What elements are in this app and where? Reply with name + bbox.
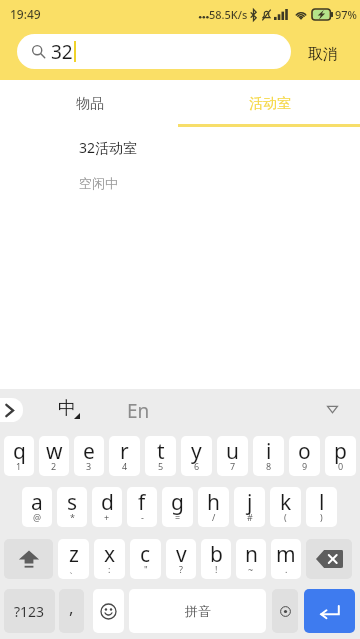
staticText: ) — [320, 511, 323, 523]
staticText: d — [101, 488, 114, 517]
staticText: 32活动室 — [79, 138, 138, 157]
staticText: n — [245, 540, 258, 569]
staticText: 空闲中 — [79, 175, 118, 191]
staticText: r — [120, 437, 129, 466]
staticText: ! — [215, 563, 218, 575]
staticText: t — [157, 437, 165, 466]
button[interactable]: g — [162, 487, 193, 527]
staticText: 中 — [58, 397, 76, 420]
button[interactable]: Period — [272, 589, 298, 633]
button[interactable]: 取消 — [307, 39, 339, 70]
button[interactable]: z — [58, 539, 89, 579]
button[interactable]: q — [4, 436, 34, 476]
button[interactable]: p — [325, 436, 356, 476]
staticText: z — [69, 540, 79, 569]
button[interactable]: l — [306, 487, 337, 527]
button[interactable]: 物品 — [0, 80, 180, 128]
staticText: 32 — [51, 39, 73, 65]
button[interactable]: Backspace — [306, 539, 352, 579]
staticText: - — [141, 511, 144, 523]
staticText: o — [298, 437, 311, 466]
staticText: : — [108, 563, 111, 575]
button[interactable]: y — [181, 436, 212, 476]
button[interactable]: o — [289, 436, 320, 476]
button[interactable]: Shift — [4, 539, 53, 579]
staticText: ?123 — [14, 602, 45, 621]
staticText: 6 — [194, 460, 200, 472]
staticText: 拼音 — [185, 603, 211, 619]
button[interactable]: ?123 — [4, 589, 55, 633]
staticText: b — [210, 540, 223, 569]
button[interactable]: t — [145, 436, 176, 476]
staticText: / — [212, 511, 216, 523]
staticText: " — [144, 563, 148, 575]
staticText: v — [176, 540, 187, 569]
staticText: 4 — [122, 460, 128, 472]
button[interactable]: k — [270, 487, 301, 527]
staticText: x — [104, 540, 116, 569]
staticText: m — [276, 540, 296, 569]
staticText: ( — [284, 511, 287, 523]
staticText: 97% — [335, 7, 357, 22]
button[interactable]: Enter — [304, 589, 355, 633]
staticText: 2 — [51, 460, 57, 472]
button[interactable]: s — [57, 487, 87, 527]
button[interactable]: f — [127, 487, 157, 527]
staticText: h — [207, 488, 220, 517]
staticText: 活动室 — [249, 95, 291, 113]
staticText: c — [140, 540, 151, 569]
button[interactable]: j — [234, 487, 265, 527]
button[interactable]: 拼音 — [129, 589, 266, 633]
staticText: * — [70, 511, 75, 523]
staticText: g — [171, 488, 184, 517]
button[interactable]: n — [236, 539, 266, 579]
staticText: ? — [179, 563, 183, 575]
staticText: @ — [33, 511, 42, 523]
staticText: 19:49 — [10, 6, 41, 22]
button[interactable]: h — [198, 487, 229, 527]
button[interactable]: b — [201, 539, 231, 579]
staticText: p — [334, 437, 347, 466]
staticText: f — [138, 488, 146, 517]
button[interactable]: v — [166, 539, 196, 579]
button[interactable]: Emoji — [93, 589, 124, 633]
button[interactable]: u — [217, 436, 248, 476]
staticText: . — [285, 563, 288, 575]
button[interactable]: 活动室 — [180, 80, 360, 128]
staticText: q — [13, 437, 26, 466]
staticText: j — [247, 488, 253, 517]
staticText: i — [266, 437, 272, 466]
button[interactable]: 32 — [17, 34, 291, 69]
staticText: s — [67, 488, 78, 517]
staticText: a — [31, 488, 43, 517]
staticText: 7 — [230, 460, 236, 472]
staticText: # — [247, 511, 253, 523]
staticText: 8 — [266, 460, 272, 472]
button[interactable]: 32活动室 — [0, 128, 360, 203]
staticText: , — [69, 596, 74, 619]
staticText: 物品 — [76, 95, 104, 113]
button[interactable]: w — [39, 436, 69, 476]
button[interactable]: x — [94, 539, 125, 579]
staticText: u — [226, 437, 239, 466]
staticText: 0 — [338, 460, 344, 472]
staticText: + — [104, 511, 110, 523]
staticText: 3 — [86, 460, 92, 472]
staticText: k — [280, 488, 292, 517]
staticText: l — [319, 488, 325, 517]
button[interactable]: Hide keyboard — [322, 399, 342, 419]
staticText: y — [191, 437, 202, 466]
button[interactable]: m — [271, 539, 301, 579]
button[interactable]: c — [130, 539, 161, 579]
button[interactable]: i — [253, 436, 284, 476]
button[interactable]: , — [59, 589, 84, 633]
staticText: 5 — [158, 460, 164, 472]
button[interactable]: Expand keyboard toolbar — [0, 398, 23, 422]
button[interactable]: r — [109, 436, 140, 476]
button[interactable]: d — [92, 487, 122, 527]
staticText: 9 — [302, 460, 308, 472]
button[interactable]: a — [22, 487, 52, 527]
button[interactable]: e — [74, 436, 104, 476]
staticText: 取消 — [308, 45, 338, 64]
staticText: = — [175, 511, 181, 523]
